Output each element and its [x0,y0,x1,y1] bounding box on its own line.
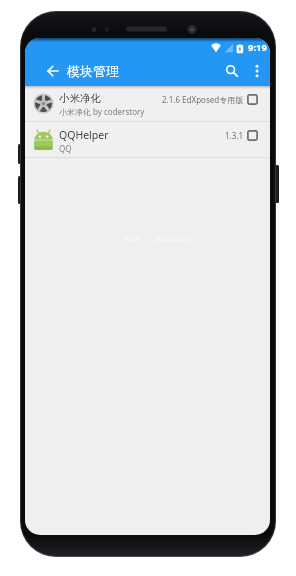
staticText: 小米净化 [59,92,101,105]
button[interactable] [245,59,269,83]
staticText: 9:19 [248,41,267,54]
staticText: 模块管理 [67,63,119,79]
staticText: QQHelper [59,128,109,142]
staticText: QQ [59,143,72,154]
button[interactable]: QQHelper [25,122,270,157]
button[interactable]: 小米净化 [25,86,270,121]
staticText: 2.1.6 EdXposed专用版 [162,94,244,105]
button[interactable] [43,61,63,81]
button[interactable] [247,94,258,105]
button[interactable] [247,130,258,141]
staticText: 小米净化 by coderstory [59,106,145,117]
staticText: 1.3.1 [225,130,244,141]
button[interactable] [219,58,245,84]
